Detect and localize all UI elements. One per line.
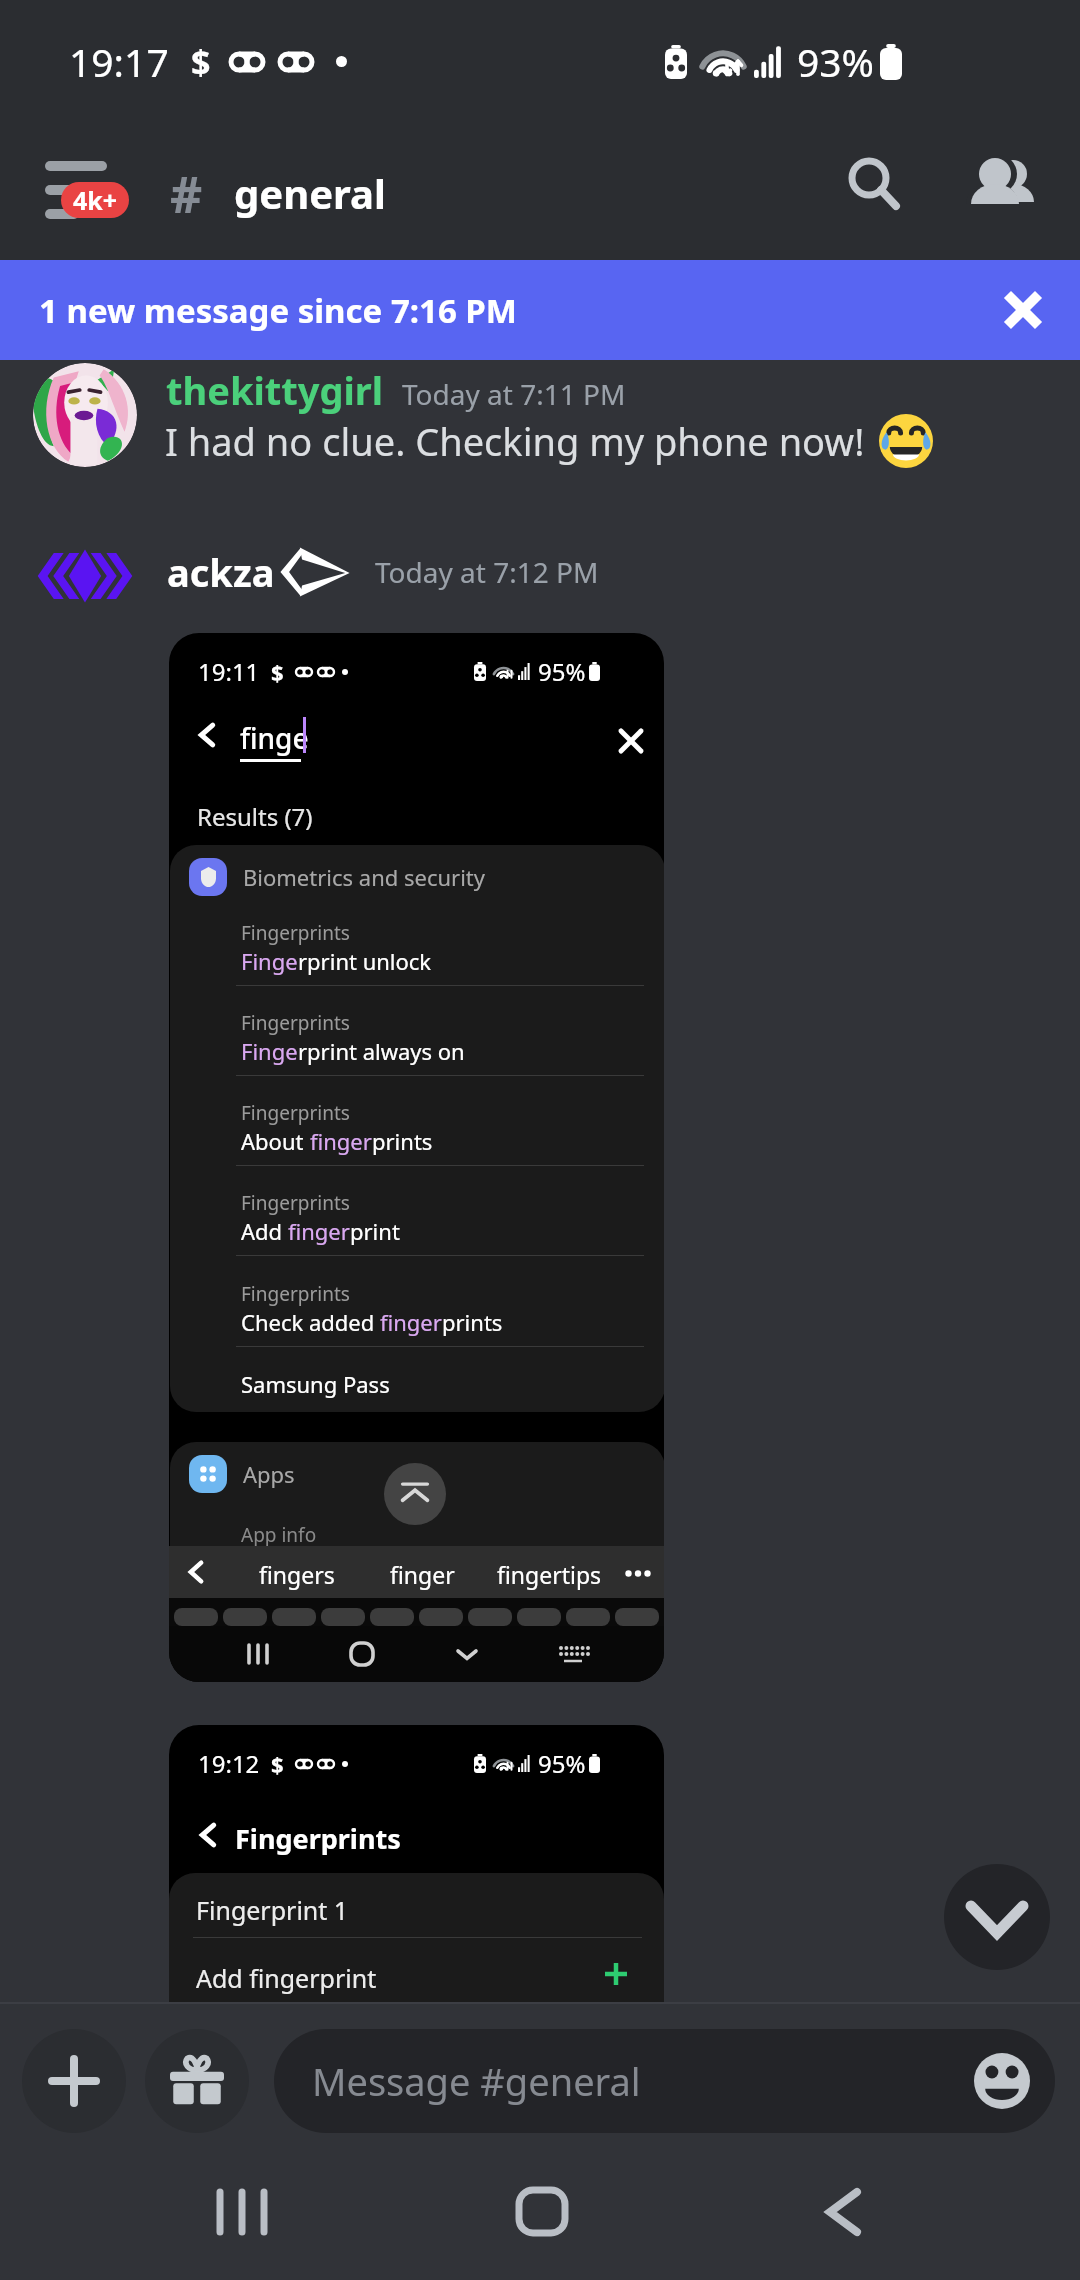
staticText: Samsung Pass <box>241 1369 390 1399</box>
staticText: Results (7) <box>197 800 313 833</box>
staticText: 93% <box>797 35 875 88</box>
button[interactable]: Add attachment <box>22 2029 126 2133</box>
button[interactable]: thekittygirl avatar <box>33 363 137 467</box>
staticText: 19:17 <box>69 35 169 88</box>
staticText: 19:12 <box>198 1747 260 1780</box>
staticText: Today at 7:11 PM <box>402 375 626 413</box>
staticText: Check added <box>241 1307 380 1337</box>
staticText: Add <box>241 1216 288 1246</box>
staticText: Message #general <box>312 2055 641 2107</box>
staticText: # <box>170 160 203 228</box>
staticText: finger <box>380 1307 442 1337</box>
button[interactable]: Home <box>500 2170 580 2250</box>
staticText: 4k+ <box>73 183 118 217</box>
staticText: finger <box>390 1559 455 1590</box>
staticText: fingers <box>259 1559 335 1590</box>
staticText: Add fingerprint <box>196 1961 377 1995</box>
staticText: Fingerprints <box>241 1010 350 1036</box>
button[interactable]: Emoji <box>974 2053 1030 2109</box>
staticText: fingertips <box>497 1559 602 1590</box>
button[interactable]: Jump to present <box>944 1864 1050 1970</box>
staticText: prints <box>372 1126 433 1156</box>
staticText: 1 new message since 7:16 PM <box>39 288 517 333</box>
staticText: prints <box>442 1307 503 1337</box>
button[interactable]: Open channel list <box>40 156 150 230</box>
staticText: Finge <box>241 1036 298 1066</box>
staticText: 95% <box>538 1747 586 1780</box>
staticText: ackza <box>167 546 275 598</box>
staticText: 19:11 <box>198 655 260 688</box>
staticText: I had no clue. Checking my phone now! <box>165 415 865 467</box>
button[interactable]: Message #general <box>274 2029 1055 2133</box>
button[interactable]: Search <box>821 130 917 226</box>
staticText: 95% <box>538 655 586 688</box>
staticText: Fingerprints <box>235 1820 401 1857</box>
button[interactable]: Dismiss <box>988 275 1058 345</box>
staticText: thekittygirl <box>166 364 384 416</box>
staticText: $ <box>271 657 284 687</box>
staticText: rprint unlock <box>298 946 432 976</box>
staticText: finge <box>240 719 309 757</box>
button[interactable]: Recents <box>200 2170 280 2250</box>
staticText: Today at 7:12 PM <box>375 553 599 591</box>
staticText: Fingerprints <box>241 920 350 946</box>
staticText: App info <box>241 1522 317 1548</box>
button[interactable]: Back <box>805 2170 885 2250</box>
staticText: Finge <box>241 946 298 976</box>
staticText: Fingerprints <box>241 1190 350 1216</box>
staticText: Fingerprint 1 <box>196 1893 349 1927</box>
staticText: finger <box>288 1216 350 1246</box>
button[interactable]: Scroll to top <box>384 1463 446 1525</box>
button[interactable]: 1 new message since 7:16 PM <box>0 260 1080 360</box>
staticText: finger <box>310 1126 372 1156</box>
staticText: About <box>241 1126 310 1156</box>
staticText: Fingerprint and Biometrics <box>241 1547 556 1572</box>
staticText: print <box>350 1216 400 1246</box>
staticText: rprint always on <box>298 1036 465 1066</box>
staticText: Apps <box>243 1459 295 1489</box>
staticText: Fingerprints <box>241 1100 350 1126</box>
button[interactable]: 19:11 <box>169 633 664 1682</box>
staticText: $ <box>271 1749 284 1779</box>
button[interactable]: 19:12 <box>169 1725 664 2015</box>
staticText: Biometrics and security <box>243 862 486 892</box>
staticText: general <box>234 166 386 220</box>
button[interactable]: ackza avatar <box>33 524 137 628</box>
staticText: Fingerprints <box>241 1281 350 1307</box>
staticText: $ <box>191 39 211 85</box>
button[interactable]: Members <box>958 140 1048 230</box>
button[interactable]: Send a gift <box>145 2029 249 2133</box>
